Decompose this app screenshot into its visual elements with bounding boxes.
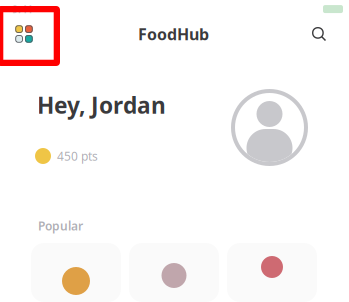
button[interactable]: Burger	[227, 243, 317, 302]
button[interactable]: Salad	[129, 243, 219, 302]
button[interactable]: Menu	[7, 17, 41, 51]
button[interactable]: Search	[306, 21, 332, 47]
staticText: 9:41	[12, 2, 33, 16]
staticText: FoodHub	[138, 23, 209, 45]
staticText: 450 pts	[57, 148, 98, 164]
button[interactable]: Pancakes	[31, 243, 121, 302]
staticText: Hey, Jordan	[37, 90, 166, 120]
staticText: Popular	[38, 218, 83, 234]
